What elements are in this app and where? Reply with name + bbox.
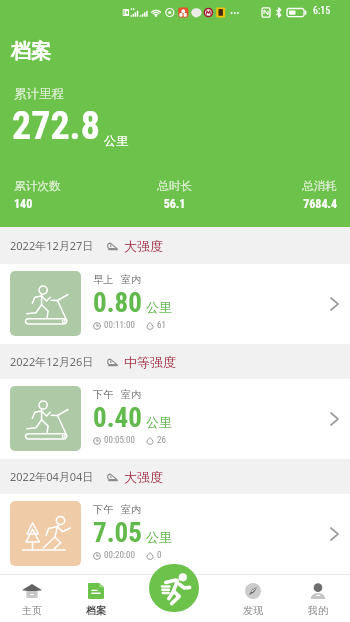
staticText: 总消耗 [233, 179, 337, 194]
staticText: 00:11:00 [104, 320, 135, 331]
staticText: 0 [157, 550, 162, 561]
staticText: 公里 [104, 133, 128, 148]
staticText: 公里 [146, 299, 172, 315]
staticText: 2022年12月26日 [10, 354, 94, 369]
staticText: 00:05:00 [104, 435, 135, 446]
staticText: 室内 [121, 503, 142, 516]
button[interactable]: 档案 [64, 574, 128, 622]
staticText: 272.8 [12, 104, 100, 149]
staticText: 7.05 [93, 517, 142, 549]
staticText: 室内 [121, 273, 142, 286]
staticText: 56.1 [116, 197, 233, 211]
button[interactable]: 发现 [220, 574, 285, 622]
staticText: 7684.4 [233, 197, 337, 211]
button[interactable]: 下午 [0, 494, 350, 574]
staticText: 室内 [121, 388, 142, 401]
staticText: 累计次数 [14, 179, 116, 194]
staticText: 累计里程 [14, 86, 64, 102]
button[interactable]: 下午 [0, 379, 350, 459]
staticText: 发现 [243, 604, 263, 617]
staticText: 主页 [22, 604, 42, 617]
staticText: 档案 [11, 39, 51, 64]
staticText: 2022年04月04日 [10, 469, 94, 484]
staticText: 140 [14, 197, 116, 211]
button[interactable]: 主页 [0, 574, 64, 622]
staticText: 2022年12月27日 [10, 238, 94, 253]
button[interactable]: 我的 [285, 574, 350, 622]
staticText: 6:15 [313, 5, 331, 17]
staticText: 0.40 [93, 402, 142, 434]
staticText: 下午 [93, 503, 114, 516]
button[interactable]: 开始跑步 [149, 564, 199, 612]
staticText: 早上 [93, 273, 114, 286]
staticText: 总时长 [116, 179, 233, 194]
staticText: 00:20:00 [104, 550, 135, 561]
button[interactable]: 早上 [0, 264, 350, 344]
staticText: 大强度 [124, 469, 163, 485]
staticText: 26 [157, 435, 166, 446]
staticText: 我的 [308, 604, 328, 617]
staticText: 公里 [146, 414, 172, 430]
staticText: 大强度 [124, 238, 163, 254]
staticText: 公里 [146, 529, 172, 545]
staticText: 中等强度 [124, 354, 176, 370]
staticText: 0.80 [93, 287, 142, 319]
staticText: 61 [157, 320, 166, 331]
staticText: 档案 [86, 604, 106, 617]
staticText: 下午 [93, 388, 114, 401]
